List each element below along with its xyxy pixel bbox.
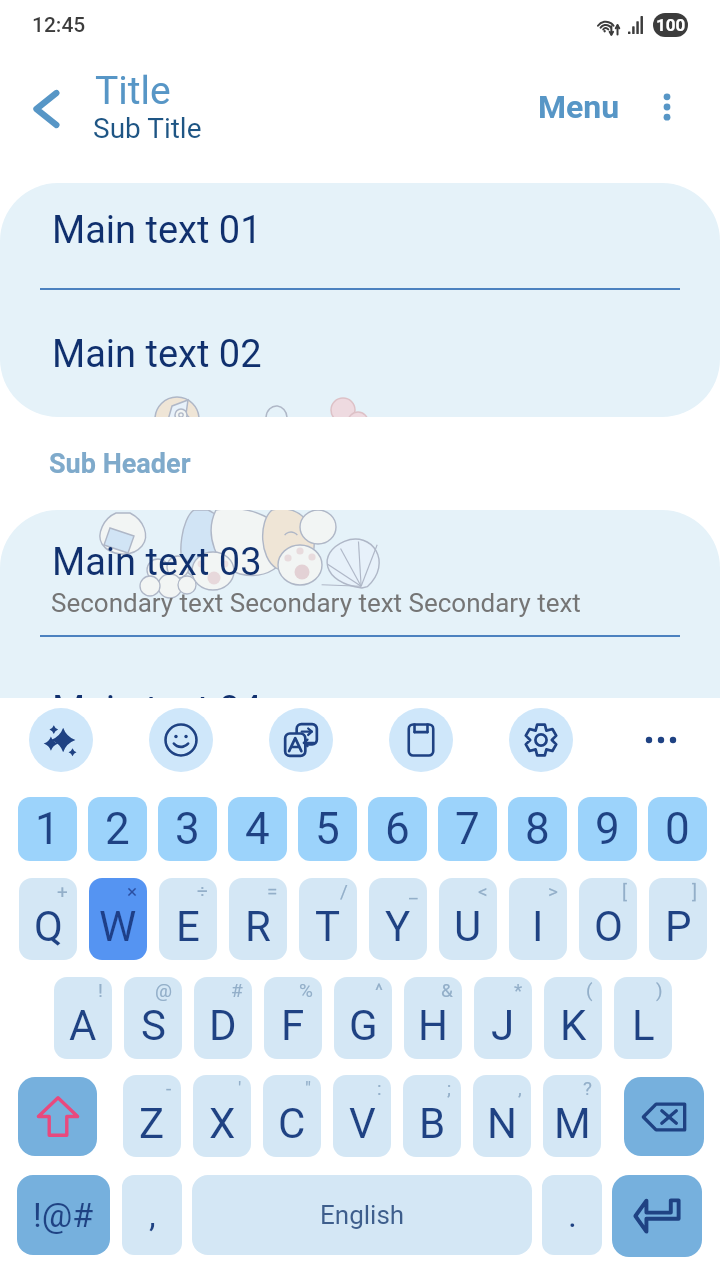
button[interactable]: Main text 01	[0, 183, 720, 291]
staticText: Main text 03	[52, 540, 262, 585]
button[interactable]: ?	[543, 1075, 601, 1157]
button[interactable]: Shift	[18, 1077, 97, 1156]
staticText: 6	[385, 803, 410, 855]
button[interactable]: 0	[648, 797, 707, 861]
button[interactable]: English	[192, 1175, 532, 1255]
staticText: Y	[385, 902, 411, 951]
staticText: *	[514, 979, 523, 1001]
button[interactable]: Main text 02	[0, 291, 720, 417]
button[interactable]: <	[439, 878, 497, 960]
button[interactable]: !@#	[17, 1175, 110, 1255]
staticText: Main text 01	[52, 208, 262, 253]
staticText: [	[622, 880, 628, 902]
staticText: !@#	[33, 1195, 94, 1235]
button[interactable]: 7	[438, 797, 497, 861]
button[interactable]: 9	[578, 797, 637, 861]
staticText: +	[57, 880, 68, 902]
staticText: Main text 02	[52, 332, 262, 377]
button[interactable]: (	[544, 977, 602, 1059]
staticText: (	[586, 979, 593, 1001]
button[interactable]: Menu	[532, 82, 626, 132]
button[interactable]: 3	[158, 797, 217, 861]
staticText: Title	[95, 68, 171, 114]
staticText: .	[568, 1195, 577, 1235]
button[interactable]: Back	[14, 77, 78, 141]
staticText: 4	[245, 803, 270, 855]
button[interactable]: Main text 04	[0, 638, 720, 770]
staticText: #	[231, 979, 243, 1001]
button[interactable]: Clipboard	[389, 708, 453, 772]
staticText: ÷	[197, 880, 208, 902]
staticText: J	[491, 1001, 515, 1050]
button[interactable]: More	[629, 708, 693, 772]
button[interactable]: +	[19, 878, 77, 960]
staticText: Sub Title	[93, 112, 202, 145]
button[interactable]: >	[509, 878, 567, 960]
button[interactable]: 4	[228, 797, 287, 861]
button[interactable]: Main text 03	[0, 510, 720, 638]
staticText: 5	[315, 803, 340, 855]
staticText: ×	[127, 880, 138, 902]
staticText: I	[532, 902, 544, 951]
staticText: N	[487, 1099, 517, 1148]
button[interactable]: .	[542, 1175, 602, 1255]
button[interactable]: *	[474, 977, 532, 1059]
button[interactable]: ÷	[159, 878, 217, 960]
button[interactable]: "	[263, 1075, 321, 1157]
staticText: G	[349, 1001, 378, 1050]
staticText: =	[267, 880, 278, 902]
button[interactable]: ×	[89, 878, 147, 960]
button[interactable]: =	[229, 878, 287, 960]
button[interactable]: Translate	[269, 708, 333, 772]
button[interactable]: '	[193, 1075, 251, 1157]
button[interactable]: @	[124, 977, 182, 1059]
staticText: ;	[447, 1077, 452, 1099]
staticText: 8	[525, 803, 550, 855]
staticText: O	[594, 902, 623, 951]
button[interactable]: %	[264, 977, 322, 1059]
button[interactable]: ;	[403, 1075, 461, 1157]
staticText: ,	[518, 1077, 522, 1099]
staticText: ]	[692, 880, 698, 902]
staticText: &	[441, 979, 453, 1001]
staticText: ^	[375, 979, 383, 1001]
button[interactable]: Enter	[612, 1175, 702, 1257]
button[interactable]: -	[123, 1075, 181, 1157]
button[interactable]: ,	[122, 1175, 182, 1255]
button[interactable]: _	[369, 878, 427, 960]
button[interactable]: !	[54, 977, 112, 1059]
button[interactable]: 1	[18, 797, 77, 861]
button[interactable]: Backspace	[624, 1077, 704, 1156]
staticText: English	[320, 1200, 405, 1230]
button[interactable]: )	[614, 977, 672, 1059]
staticText: E	[176, 902, 200, 951]
button[interactable]: [	[579, 878, 637, 960]
staticText: P	[665, 902, 692, 951]
staticText: T	[315, 902, 341, 951]
button[interactable]: :	[333, 1075, 391, 1157]
staticText: Z	[139, 1099, 165, 1148]
button[interactable]: AI assist	[29, 708, 93, 772]
button[interactable]: 8	[508, 797, 567, 861]
button[interactable]: Emoji	[149, 708, 213, 772]
button[interactable]: ^	[334, 977, 392, 1059]
button[interactable]: 2	[88, 797, 147, 861]
button[interactable]: More options	[638, 78, 696, 136]
button[interactable]: ]	[649, 878, 707, 960]
staticText: ,	[149, 1195, 156, 1235]
staticText: 1	[35, 803, 60, 855]
button[interactable]: #	[194, 977, 252, 1059]
button[interactable]: &	[404, 977, 462, 1059]
button[interactable]: Settings	[509, 708, 573, 772]
staticText: D	[209, 1001, 237, 1050]
staticText: A	[69, 1001, 97, 1050]
button[interactable]: 6	[368, 797, 427, 861]
button[interactable]: ,	[473, 1075, 531, 1157]
button[interactable]: 5	[298, 797, 357, 861]
staticText: <	[478, 880, 488, 902]
staticText: :	[377, 1077, 382, 1099]
staticText: >	[548, 880, 558, 902]
button[interactable]: /	[299, 878, 357, 960]
staticText: R	[245, 902, 271, 951]
staticText: 100	[656, 15, 686, 35]
